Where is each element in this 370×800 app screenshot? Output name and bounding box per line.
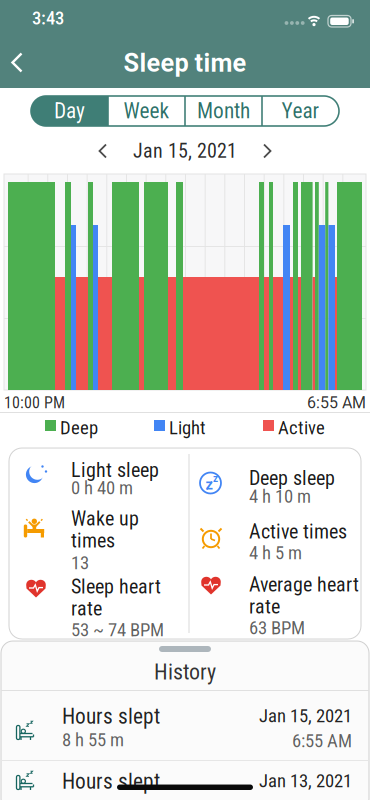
button[interactable]: Month <box>185 96 262 126</box>
staticText: Light <box>169 417 206 439</box>
staticText: Deep <box>60 417 98 439</box>
staticText: z <box>213 473 218 484</box>
button[interactable]: Day <box>31 96 108 126</box>
staticText: times <box>71 529 115 552</box>
staticText: Jan 15, 2021 <box>259 705 352 727</box>
staticText: Jan 13, 2021 <box>259 770 352 792</box>
staticText: 63 BPM <box>249 617 305 639</box>
staticText: Hours slept <box>62 769 160 794</box>
staticText: Average heart <box>249 573 359 596</box>
staticText: Year <box>281 98 319 123</box>
staticText: 8 h 55 m <box>62 729 124 751</box>
staticText: 4 h 10 m <box>249 485 311 507</box>
staticText: 6:55 AM <box>307 393 366 412</box>
staticText: Sleep time <box>123 48 246 78</box>
staticText: Day <box>54 98 85 123</box>
button[interactable]: Week <box>108 96 185 126</box>
staticText: 13 <box>71 552 89 574</box>
staticText: Active <box>278 417 325 439</box>
staticText: rate <box>249 595 280 618</box>
button[interactable] <box>2 44 370 800</box>
staticText: 6:55 AM <box>292 730 352 752</box>
staticText: 0 h 40 m <box>71 477 133 499</box>
button[interactable]: Hours slept <box>0 691 370 800</box>
staticText: z <box>205 476 212 493</box>
staticText: 3:43 <box>32 7 64 29</box>
button[interactable]: Year <box>262 96 339 126</box>
staticText: 53 ~ 74 BPM <box>71 619 164 641</box>
staticText: Deep sleep <box>249 466 335 490</box>
staticText: Wake up <box>71 507 139 530</box>
staticText: Light sleep <box>71 458 159 482</box>
staticText: Month <box>197 98 250 123</box>
staticText: 4 h 5 m <box>249 542 302 564</box>
staticText: Sleep heart <box>71 575 161 598</box>
staticText: Jan 15, 2021 <box>133 139 237 163</box>
button[interactable] <box>252 136 370 800</box>
staticText: Hours slept <box>62 704 160 729</box>
staticText: rate <box>71 597 102 620</box>
staticText: 10:00 PM <box>4 393 65 412</box>
staticText: History <box>154 659 216 685</box>
button[interactable] <box>88 136 370 800</box>
button[interactable]: Hours slept <box>0 761 370 800</box>
staticText: Week <box>123 98 169 123</box>
staticText: Active times <box>249 520 347 543</box>
